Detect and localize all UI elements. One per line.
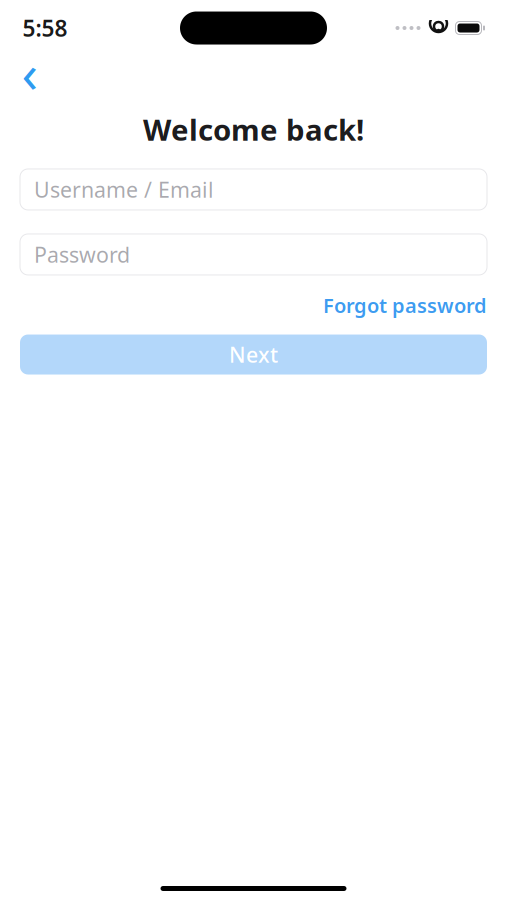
staticText: Forgot password (323, 292, 487, 319)
button[interactable]: Username / Email (20, 169, 487, 210)
staticText: Username / Email (34, 175, 214, 204)
staticText: Next (229, 340, 278, 369)
staticText: Password (34, 240, 130, 269)
button[interactable]: Password (20, 234, 487, 275)
button[interactable]: Forgot password (323, 292, 487, 319)
staticText: ‹ (21, 37, 38, 107)
staticText: Welcome back! (143, 110, 364, 149)
button[interactable]: Next (20, 334, 487, 374)
button[interactable]: Back (10, 58, 50, 92)
staticText: 5:58 (22, 13, 67, 43)
